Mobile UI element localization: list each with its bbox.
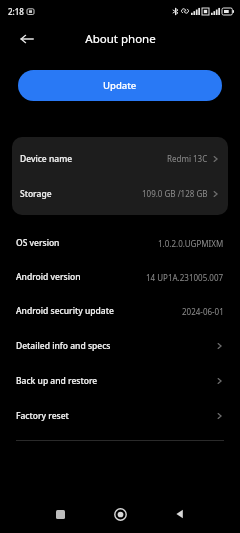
staticText: Storage	[20, 188, 52, 200]
staticText: Redmi 13C	[167, 153, 208, 164]
staticText: Back up and restore	[16, 375, 98, 387]
staticText: Factory reset	[16, 410, 69, 422]
staticText: Update	[103, 79, 137, 92]
button[interactable]: Storage	[12, 176, 228, 211]
button[interactable]: Recents	[47, 501, 73, 527]
staticText: 2024-06-01	[182, 306, 224, 317]
staticText: OS version	[16, 237, 60, 249]
button[interactable]: Android security update	[8, 294, 232, 328]
button[interactable]: Android version	[8, 260, 232, 294]
button[interactable]: Back	[14, 26, 40, 52]
button[interactable]: Home	[107, 501, 133, 527]
staticText: About phone	[85, 31, 156, 47]
staticText: 14 UP1A.231005.007	[146, 272, 224, 283]
button[interactable]: Back up and restore	[8, 363, 232, 398]
staticText: Android version	[16, 271, 81, 283]
button[interactable]: Update	[18, 70, 222, 101]
button[interactable]: Device name	[12, 141, 228, 176]
button[interactable]: OS version	[8, 226, 232, 260]
button[interactable]: Detailed info and specs	[8, 328, 232, 363]
button[interactable]: Back	[167, 501, 193, 527]
staticText: Detailed info and specs	[16, 340, 111, 352]
staticText: Android security update	[16, 305, 114, 317]
button[interactable]: Factory reset	[8, 398, 232, 433]
staticText: 109.0 GB /128 GB	[142, 188, 208, 199]
staticText: Device name	[20, 153, 73, 165]
staticText: 1.0.2.0.UGPMIXM	[158, 238, 224, 249]
staticText: 2:18	[8, 6, 24, 17]
